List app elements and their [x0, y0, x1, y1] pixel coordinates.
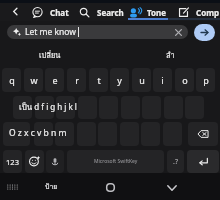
- button[interactable]: 123: [3, 150, 22, 173]
- button[interactable]: Emoji: [25, 150, 44, 173]
- button[interactable]: u: [132, 68, 151, 92]
- staticText: w: [30, 74, 38, 86]
- button[interactable]: Key: [35, 96, 54, 119]
- button[interactable]: Send: [194, 24, 215, 41]
- staticText: r: [75, 74, 79, 86]
- staticText: y: [117, 74, 122, 86]
- button[interactable]: t: [89, 68, 108, 92]
- staticText: Let me know: [25, 26, 76, 38]
- button[interactable]: Key: [13, 96, 32, 119]
- button[interactable]: Key: [56, 96, 75, 119]
- button[interactable]: เปลี่ยน: [20, 47, 80, 63]
- button[interactable]: p: [196, 68, 215, 92]
- button[interactable]: Home: [101, 178, 120, 197]
- staticText: O z x c v b n m: [9, 127, 67, 139]
- button[interactable]: Back: [8, 4, 23, 19]
- button[interactable]: e: [45, 68, 64, 92]
- button[interactable]: Chat: [32, 3, 72, 21]
- button[interactable]: i: [153, 68, 172, 92]
- staticText: เปลี่ยน: [39, 49, 61, 61]
- button[interactable]: Key: [34, 122, 53, 146]
- button[interactable]: Hide keyboard: [162, 178, 181, 197]
- button[interactable]: .?: [167, 150, 184, 173]
- staticText: เป็น d f i g h j k l: [19, 101, 77, 114]
- staticText: e: [52, 74, 58, 86]
- staticText: o: [182, 74, 188, 86]
- staticText: p: [203, 74, 209, 86]
- staticText: u: [139, 74, 145, 86]
- staticText: ป้าย: [45, 181, 58, 192]
- button[interactable]: Microsoft SwiftKey: [67, 150, 164, 173]
- button[interactable]: Tone: [129, 3, 169, 21]
- button[interactable]: w: [24, 68, 43, 92]
- staticText: Search: [97, 7, 124, 18]
- staticText: Microsoft SwiftKey: [94, 158, 138, 165]
- staticText: Compose: [196, 7, 220, 18]
- button[interactable]: Switch keyboard: [4, 178, 61, 195]
- staticText: t: [97, 74, 101, 86]
- button[interactable]: Clear: [171, 25, 185, 39]
- staticText: ลำ: [166, 49, 175, 61]
- button[interactable]: r: [67, 68, 86, 92]
- staticText: .?: [173, 157, 178, 167]
- staticText: i: [161, 74, 164, 86]
- button[interactable]: Search: [79, 3, 127, 21]
- button[interactable]: Voice input: [46, 150, 64, 173]
- button[interactable]: Shift: [3, 122, 30, 146]
- button[interactable]: Key: [55, 122, 74, 146]
- button[interactable]: Backspace: [188, 122, 218, 146]
- staticText: 123: [6, 157, 19, 167]
- button[interactable]: Let me know: [7, 25, 188, 39]
- staticText: q: [9, 74, 15, 86]
- button[interactable]: Compose: [178, 3, 220, 21]
- button[interactable]: y: [110, 68, 129, 92]
- button[interactable]: ลำ: [150, 47, 190, 63]
- button[interactable]: o: [175, 68, 194, 92]
- button[interactable]: q: [2, 68, 21, 92]
- staticText: Tone: [147, 7, 167, 18]
- button[interactable]: Enter: [187, 150, 219, 173]
- staticText: Chat: [50, 7, 69, 18]
